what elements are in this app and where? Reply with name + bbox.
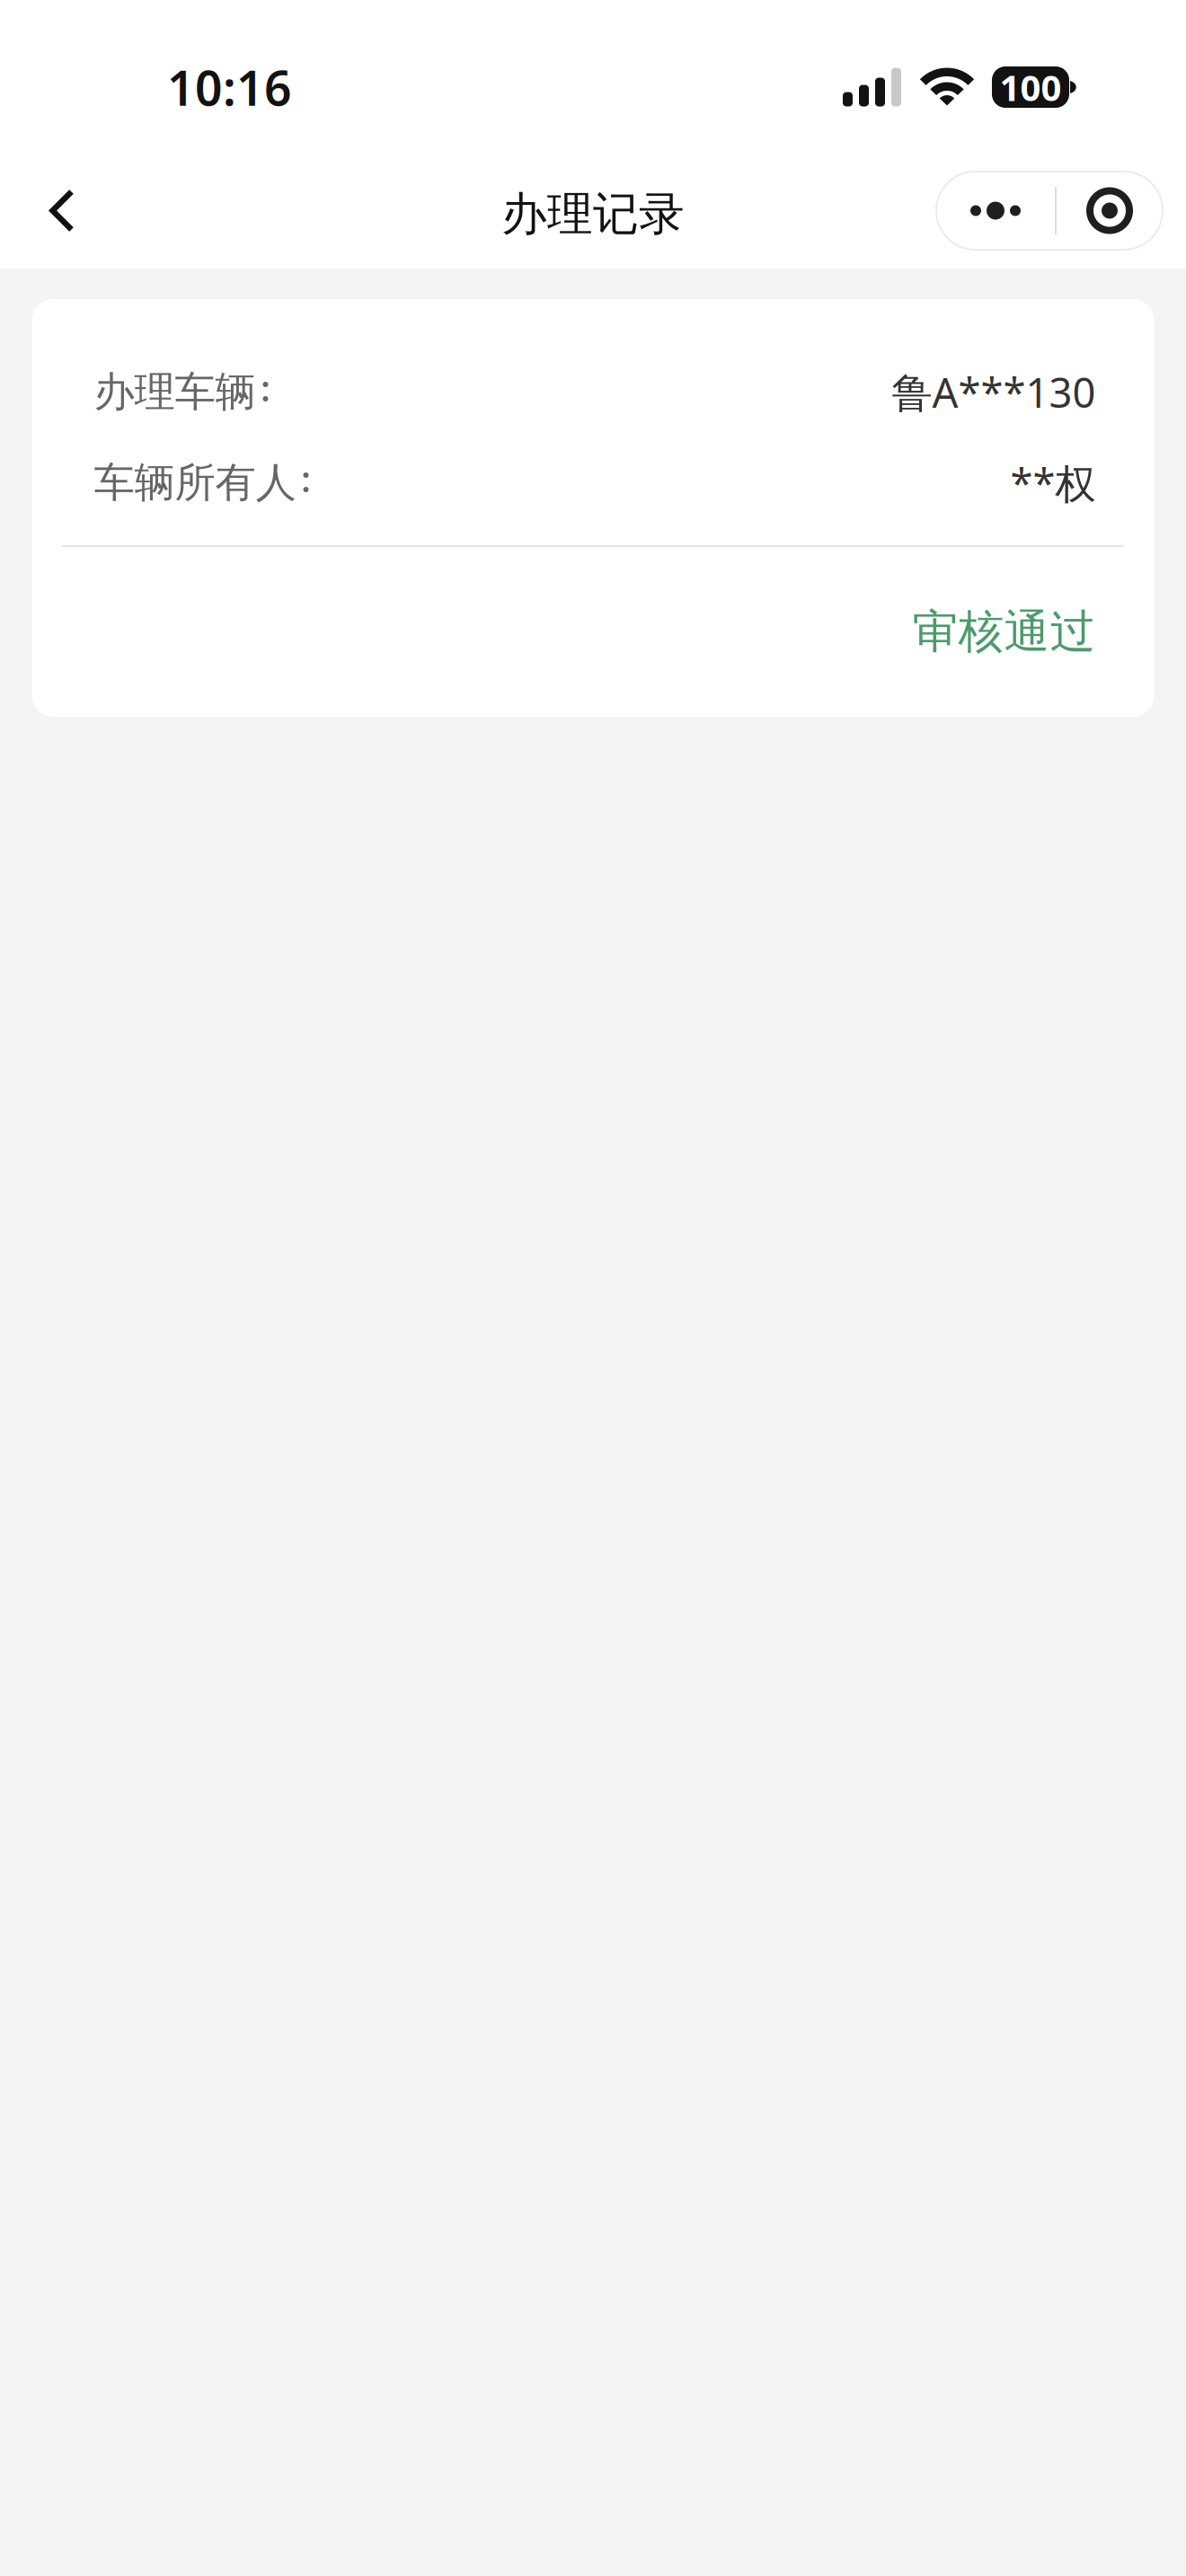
staticText: 办理记录 [501,186,685,242]
staticText: 车辆所有人 [94,458,296,508]
button[interactable]: More options [936,172,1055,250]
staticText: 鲁A***130 [892,365,1096,419]
button[interactable]: Back [19,161,105,260]
staticText: 10:16 [167,55,292,119]
button[interactable]: Close mini program [1057,172,1163,250]
staticText: **权 [1010,456,1096,510]
staticText: 办理车辆 [94,367,256,417]
staticText: 审核通过 [912,604,1096,660]
staticText: 100 [1000,63,1062,111]
